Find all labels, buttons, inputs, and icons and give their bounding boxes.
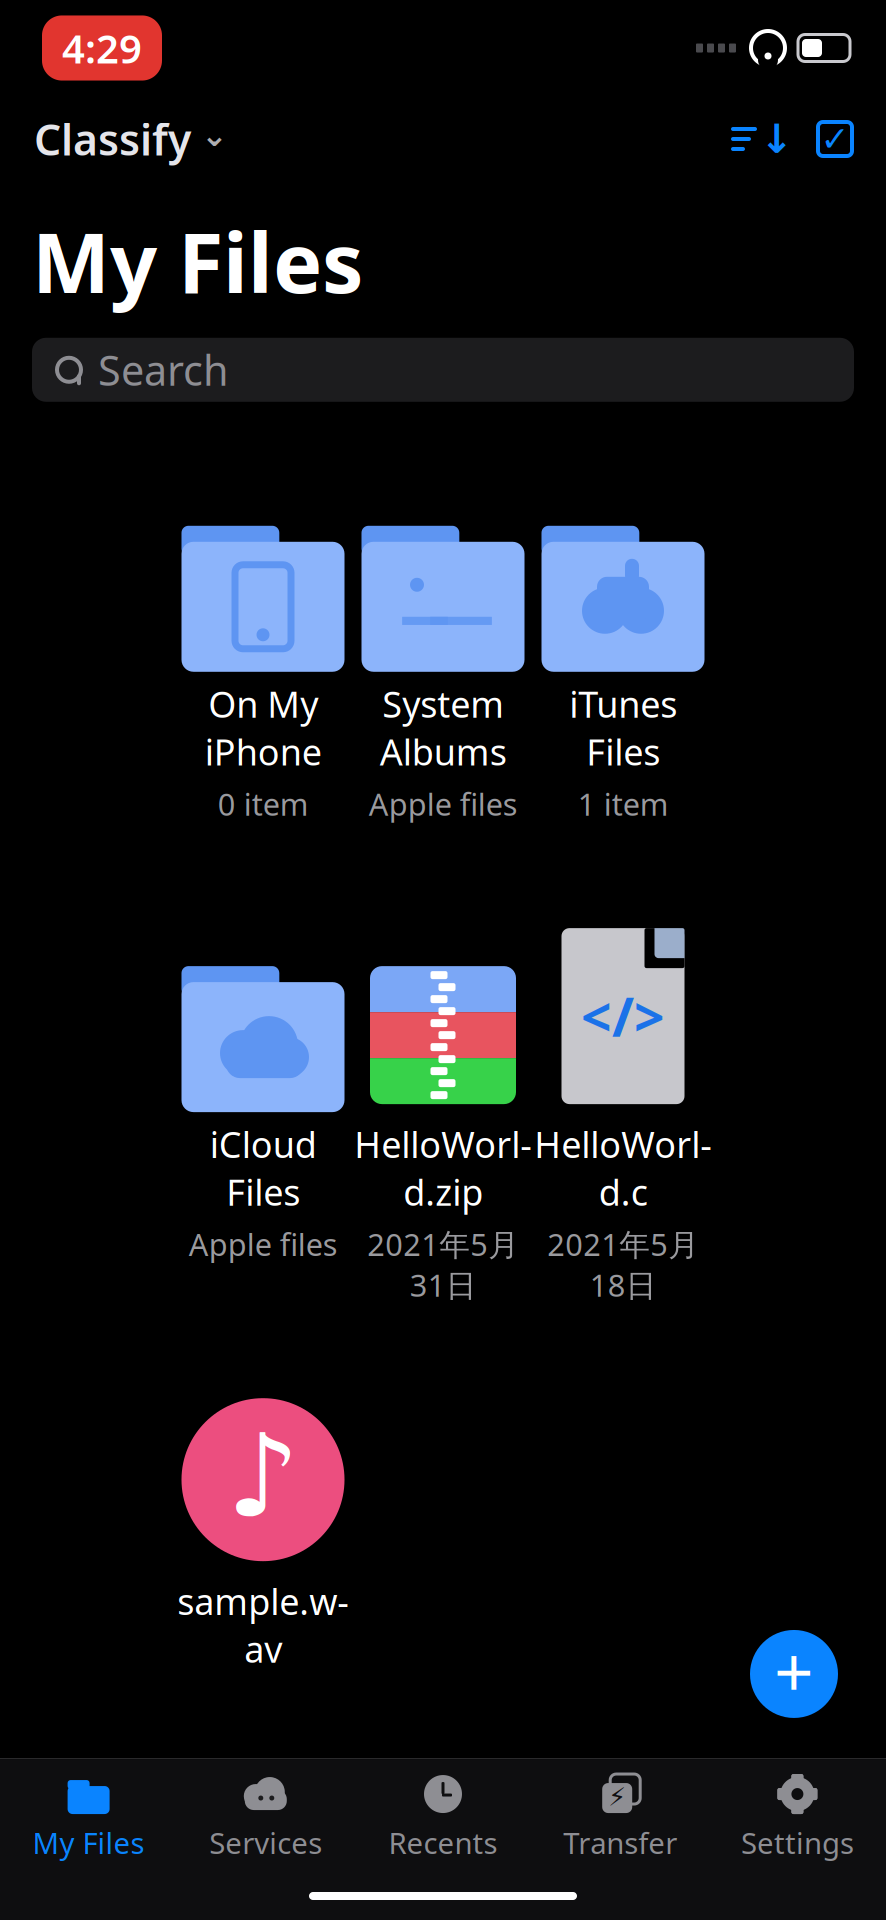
button[interactable]: </> — [533, 918, 713, 1305]
button[interactable]: ♪ — [173, 1385, 353, 1673]
staticText: Settings — [741, 1823, 854, 1862]
button[interactable]: iTunes Files — [533, 488, 713, 824]
button[interactable]: Select — [806, 107, 886, 171]
staticText: HelloWorld.c — [534, 1120, 712, 1216]
staticText: 1 item — [577, 783, 668, 824]
button[interactable]: Add — [750, 1628, 838, 1720]
button[interactable]: Sort — [719, 104, 806, 174]
button[interactable]: System Albums — [353, 488, 533, 824]
staticText: ↓ — [760, 116, 794, 162]
staticText: sample.wav — [177, 1577, 349, 1673]
staticText: 0 item — [217, 783, 308, 824]
staticText: Services — [209, 1823, 322, 1862]
staticText: On My iPhone — [204, 680, 321, 775]
staticText: Apple files — [188, 1224, 337, 1264]
staticText: </> — [581, 981, 665, 1051]
staticText: Apple files — [368, 783, 517, 824]
button[interactable]: Recents — [354, 1759, 532, 1872]
staticText: 2021年5月31日 — [367, 1224, 519, 1305]
button[interactable]: iCloud Files — [173, 918, 353, 1305]
staticText: Classify — [34, 111, 191, 167]
staticText: ✓ — [820, 119, 849, 159]
staticText: My Files — [32, 206, 363, 316]
button[interactable]: Settings — [709, 1759, 886, 1872]
button[interactable]: On My iPhone — [173, 488, 353, 824]
button[interactable]: My Files — [0, 1759, 177, 1872]
staticText: My Files — [33, 1823, 145, 1862]
staticText: HelloWorld.zip — [354, 1120, 532, 1216]
staticText: ♪ — [226, 1411, 299, 1541]
staticText: + — [774, 1625, 814, 1717]
staticText: iCloud Files — [209, 1120, 316, 1216]
staticText: Recents — [388, 1823, 497, 1862]
button[interactable]: ⚡︎ — [532, 1759, 709, 1872]
staticText: ⌄ — [201, 117, 228, 153]
staticText: ⚡︎ — [608, 1783, 626, 1811]
staticText: 4:29 — [62, 21, 142, 74]
staticText: Search — [98, 342, 229, 397]
button[interactable]: Classify — [0, 101, 228, 177]
button[interactable]: HelloWorld.zip — [353, 918, 533, 1305]
button[interactable]: Search — [32, 338, 854, 402]
staticText: System Albums — [379, 680, 506, 775]
staticText: Transfer — [563, 1823, 677, 1862]
staticText: 2021年5月18日 — [547, 1224, 699, 1305]
button[interactable]: Services — [177, 1759, 354, 1872]
staticText: iTunes Files — [569, 680, 677, 775]
